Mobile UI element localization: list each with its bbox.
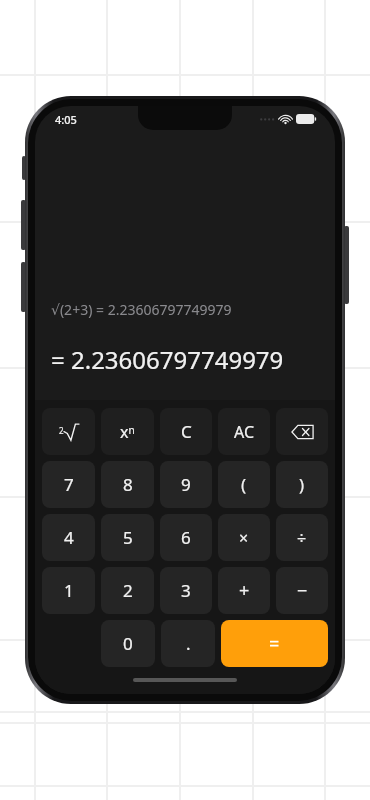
button[interactable]: 2 (101, 567, 154, 614)
button[interactable]: 1 (42, 567, 95, 614)
staticText: 8 (123, 473, 133, 496)
staticText: ÷ (297, 527, 307, 549)
staticText: − (297, 578, 308, 603)
button[interactable]: . (161, 620, 215, 667)
button[interactable]: 9 (160, 461, 212, 508)
button[interactable]: Exponent (101, 408, 154, 455)
button[interactable]: 6 (160, 514, 212, 561)
staticText: √(2+3) = 2.23606797749979 (51, 300, 232, 319)
staticText: 4:05 (55, 112, 77, 127)
staticText: C (181, 420, 192, 443)
staticText: 3 (181, 579, 191, 602)
staticText: + (239, 578, 250, 603)
button[interactable]: = (221, 620, 328, 667)
staticText: AC (234, 421, 255, 443)
button[interactable]: 4 (42, 514, 95, 561)
staticText: 0 (123, 632, 133, 655)
button[interactable]: Backspace (276, 408, 328, 455)
button[interactable]: 3 (160, 567, 212, 614)
staticText: 6 (181, 526, 191, 549)
button[interactable]: Square root (42, 408, 95, 455)
button[interactable]: 5 (101, 514, 154, 561)
staticText: = (269, 631, 280, 656)
staticText: ) (299, 473, 305, 496)
button[interactable]: 8 (101, 461, 154, 508)
button[interactable]: + (218, 567, 270, 614)
staticText: 4 (64, 526, 74, 549)
button[interactable]: 7 (42, 461, 95, 508)
staticText: xn (120, 421, 135, 443)
staticText: 7 (64, 473, 74, 496)
button[interactable]: − (276, 567, 328, 614)
staticText: 5 (123, 526, 133, 549)
staticText: = 2.23606797749979 (51, 343, 284, 376)
button[interactable]: × (218, 514, 270, 561)
staticText: 1 (64, 579, 74, 602)
staticText: × (239, 527, 249, 549)
button[interactable]: ( (218, 461, 270, 508)
staticText: 2 (59, 425, 64, 436)
button[interactable]: AC (218, 408, 270, 455)
button[interactable]: ) (276, 461, 328, 508)
staticText: 2 (123, 579, 133, 602)
staticText: 9 (181, 473, 191, 496)
button[interactable]: C (160, 408, 212, 455)
button[interactable]: ÷ (276, 514, 328, 561)
button[interactable]: 0 (101, 620, 155, 667)
staticText: ( (241, 473, 247, 496)
staticText: . (186, 632, 191, 655)
